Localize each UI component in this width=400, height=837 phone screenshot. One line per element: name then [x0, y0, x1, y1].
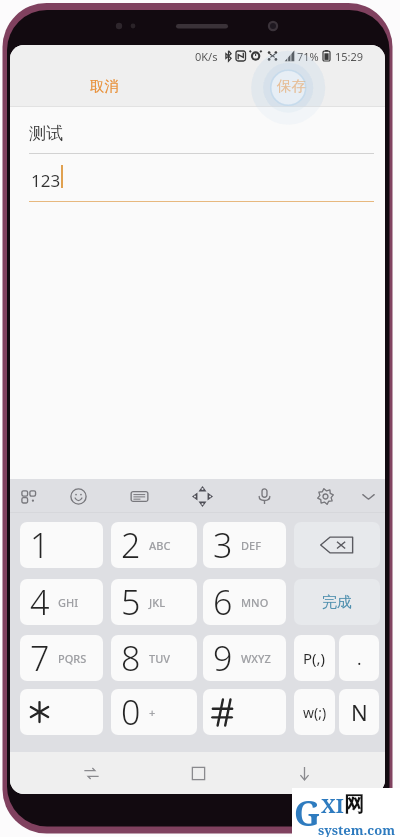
button[interactable]: Recent apps — [67, 752, 115, 794]
staticText: 1 — [30, 522, 50, 568]
staticText: 6 — [213, 579, 233, 625]
button[interactable]: Keyboard settings — [301, 479, 349, 513]
staticText: N — [351, 697, 368, 727]
button[interactable]: . — [339, 635, 379, 681]
button[interactable]: 2 — [111, 522, 197, 568]
button[interactable]: 6 — [203, 579, 286, 625]
staticText: . — [357, 647, 362, 670]
staticText: 123 — [31, 169, 61, 192]
staticText: system.com — [318, 821, 396, 837]
staticText: 71% — [297, 49, 319, 64]
button[interactable]: 7 — [20, 635, 103, 681]
button[interactable]: Hide keyboard — [280, 752, 328, 794]
button[interactable]: Clipboard — [115, 479, 163, 513]
staticText: 0 — [121, 689, 141, 735]
staticText: XI — [321, 792, 344, 819]
staticText: DEF — [241, 538, 261, 553]
staticText: 完成 — [322, 593, 352, 612]
staticText: 4 — [30, 579, 50, 625]
staticText: TUV — [149, 651, 171, 666]
staticText: JKL — [149, 595, 166, 610]
staticText: P(,) — [303, 648, 326, 668]
staticText: 保存 — [277, 77, 306, 95]
staticText: GHI — [58, 595, 79, 610]
button[interactable]: 1 — [20, 522, 103, 568]
button[interactable]: 取消 — [74, 66, 134, 106]
staticText: G — [294, 790, 321, 836]
staticText: WXYZ — [241, 651, 271, 666]
staticText: 2 — [121, 522, 141, 568]
staticText: 15:29 — [335, 49, 364, 64]
button[interactable]: Stickers — [10, 479, 53, 513]
staticText: 0K/s — [195, 49, 218, 64]
staticText: 5 — [121, 579, 141, 625]
staticText: 3 — [213, 522, 233, 568]
staticText: ABC — [149, 538, 171, 553]
button[interactable]: 4 — [20, 579, 103, 625]
staticText: 7 — [30, 635, 50, 681]
staticText: w(;) — [303, 703, 327, 722]
button[interactable]: 8 — [111, 635, 197, 681]
button[interactable]: 0 — [111, 689, 197, 735]
staticText: PQRS — [58, 651, 87, 666]
button[interactable]: 5 — [111, 579, 197, 625]
button[interactable]: w(;) — [294, 689, 335, 735]
staticText: + — [149, 705, 156, 720]
button[interactable] — [20, 689, 103, 735]
staticText: 取消 — [90, 77, 119, 95]
staticText: 8 — [121, 635, 141, 681]
button[interactable]: Backspace — [294, 522, 380, 568]
button[interactable]: Move cursor — [178, 479, 226, 513]
button[interactable]: N — [339, 689, 379, 735]
button[interactable]: Home — [174, 752, 222, 794]
staticText: 网 — [344, 792, 364, 817]
staticText: MNO — [241, 595, 269, 610]
button[interactable]: 完成 — [294, 579, 380, 625]
button[interactable]: P(,) — [294, 635, 335, 681]
button[interactable]: 3 — [203, 522, 286, 568]
button[interactable]: Voice input — [240, 479, 288, 513]
button[interactable]: 保存 — [261, 66, 321, 106]
button[interactable]: Emoji — [54, 479, 102, 513]
button[interactable] — [203, 689, 286, 735]
staticText: 9 — [213, 635, 233, 681]
button[interactable]: 9 — [203, 635, 286, 681]
button[interactable]: Hide keyboard — [344, 479, 385, 513]
staticText: 测试 — [29, 123, 63, 144]
